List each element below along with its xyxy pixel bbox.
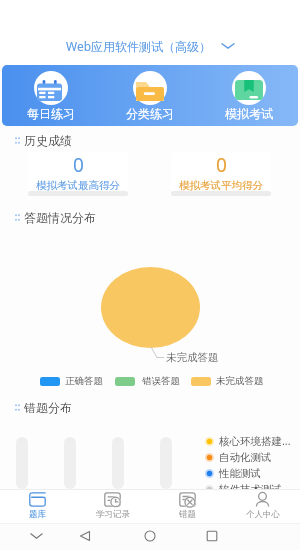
- button[interactable]: 0: [171, 152, 271, 192]
- staticText: 未完成答题: [166, 351, 219, 364]
- other: Back: [79, 530, 91, 542]
- other: Home: [144, 530, 156, 542]
- button[interactable]: 题库: [0, 489, 75, 523]
- button[interactable]: 个人中心: [225, 489, 300, 523]
- staticText: 分类练习: [126, 106, 174, 121]
- staticText: 答题情况分布: [24, 210, 96, 225]
- staticText: 0: [73, 152, 84, 178]
- staticText: 错题: [179, 509, 196, 520]
- button[interactable]: Web应用软件测试（高级）: [0, 26, 300, 65]
- button[interactable]: 0: [28, 152, 128, 192]
- staticText: 错题分布: [24, 400, 72, 415]
- staticText: 软件技术测试: [219, 483, 282, 496]
- staticText: 正确答题: [65, 375, 103, 387]
- button[interactable]: 每日练习: [2, 65, 100, 126]
- staticText: 题库: [29, 509, 46, 520]
- staticText: 个人中心: [246, 509, 280, 520]
- button[interactable]: 模拟考试: [199, 65, 298, 126]
- staticText: 性能测试: [219, 467, 261, 480]
- staticText: 学习记录: [96, 509, 130, 520]
- staticText: 模拟考试最高得分: [36, 179, 120, 192]
- staticText: 自动化测试: [219, 451, 272, 464]
- staticText: 历史成绩: [24, 133, 72, 148]
- staticText: 每日练习: [27, 106, 75, 121]
- staticText: 模拟考试平均得分: [179, 179, 263, 192]
- button[interactable]: 错题: [150, 489, 225, 523]
- staticText: 错误答题: [142, 375, 180, 387]
- button[interactable]: 学习记录: [75, 489, 150, 523]
- staticText: 未完成答题: [216, 375, 264, 387]
- other: Recents: [206, 530, 218, 542]
- staticText: 模拟考试: [225, 106, 273, 121]
- staticText: 0: [216, 152, 227, 178]
- other: Hide keyboard: [30, 532, 43, 540]
- staticText: Web应用软件测试（高级）: [66, 38, 212, 54]
- button[interactable]: 分类练习: [100, 65, 199, 126]
- staticText: 核心环境搭建...: [219, 434, 291, 448]
